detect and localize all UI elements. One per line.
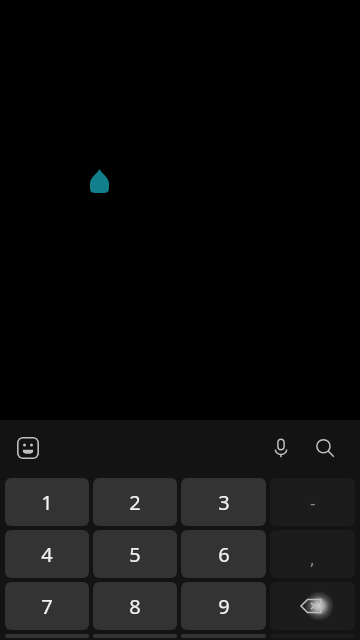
button[interactable]: 9: [181, 582, 266, 630]
staticText: 1: [41, 489, 53, 516]
staticText: 6: [218, 541, 230, 568]
button[interactable]: [0, 0, 360, 420]
button[interactable]: 8: [93, 582, 177, 630]
staticText: ,: [310, 547, 315, 570]
button[interactable]: 4: [5, 530, 89, 578]
button[interactable]: 6: [181, 530, 266, 578]
staticText: 9: [218, 593, 230, 620]
staticText: 7: [41, 593, 53, 620]
staticText: 2: [129, 489, 141, 516]
button[interactable]: Emoji: [10, 430, 46, 466]
button[interactable]: -: [270, 478, 355, 526]
button[interactable]: 3: [181, 478, 266, 526]
button[interactable]: 5: [93, 530, 177, 578]
button[interactable]: Search: [306, 429, 344, 467]
button[interactable]: ,: [270, 530, 355, 578]
button[interactable]: Backspace: [270, 582, 355, 630]
button[interactable]: 7: [5, 582, 89, 630]
staticText: 4: [41, 541, 53, 568]
staticText: -: [310, 491, 316, 514]
staticText: 5: [129, 541, 141, 568]
button[interactable]: Voice input: [262, 429, 300, 467]
button[interactable]: 1: [5, 478, 89, 526]
staticText: 8: [129, 593, 141, 620]
staticText: 3: [218, 489, 230, 516]
button[interactable]: 2: [93, 478, 177, 526]
